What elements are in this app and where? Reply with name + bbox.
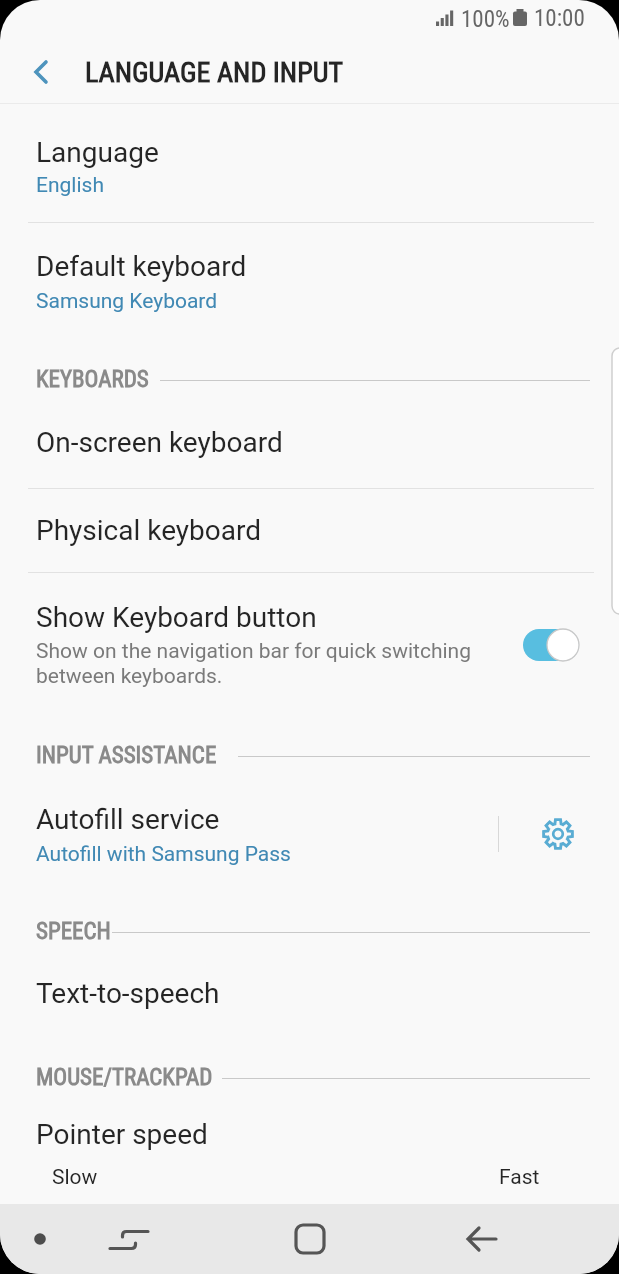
staticText: between keyboards. <box>36 664 223 689</box>
staticText: MOUSE/TRACKPAD <box>36 1064 213 1091</box>
staticText: Language <box>36 136 159 169</box>
staticText: 10:00 <box>534 5 585 32</box>
button[interactable] <box>530 806 586 862</box>
button[interactable] <box>455 1212 509 1266</box>
button[interactable]: Pointer speed <box>0 1100 619 1204</box>
staticText: LANGUAGE AND INPUT <box>85 56 343 89</box>
staticText: SPEECH <box>36 918 111 945</box>
button[interactable]: On-screen keyboard <box>0 403 619 488</box>
staticText: English <box>36 173 104 198</box>
button[interactable]: Physical keyboard <box>0 489 619 572</box>
button[interactable] <box>22 58 58 90</box>
staticText: Default keyboard <box>36 250 247 283</box>
staticText: Show on the navigation bar for quick swi… <box>36 639 471 664</box>
button[interactable]: Language <box>0 104 619 222</box>
button[interactable] <box>107 1212 161 1266</box>
button[interactable] <box>283 1212 337 1266</box>
staticText: On-screen keyboard <box>36 426 283 459</box>
button[interactable]: Default keyboard <box>0 223 619 341</box>
staticText: 100% <box>461 6 510 33</box>
staticText: Samsung Keyboard <box>36 289 218 314</box>
button[interactable]: Show Keyboard button <box>0 573 619 705</box>
staticText: Text-to-speech <box>36 977 220 1010</box>
staticText: Autofill service <box>36 803 220 836</box>
staticText: INPUT ASSISTANCE <box>36 742 217 769</box>
button[interactable]: Autofill service <box>0 780 480 884</box>
staticText: KEYBOARDS <box>36 366 149 393</box>
staticText: Physical keyboard <box>36 514 262 547</box>
staticText: Pointer speed <box>36 1118 208 1151</box>
staticText: Show Keyboard button <box>36 601 317 634</box>
staticText: Autofill with Samsung Pass <box>36 842 291 867</box>
staticText: Slow <box>52 1165 98 1190</box>
staticText: Fast <box>499 1165 540 1190</box>
button[interactable]: Text-to-speech <box>0 955 619 1039</box>
button[interactable] <box>22 1221 58 1257</box>
